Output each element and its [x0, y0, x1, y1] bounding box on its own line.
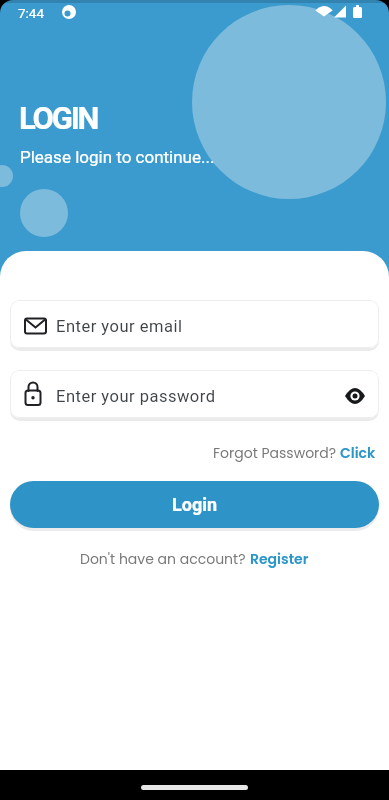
staticText: Login	[172, 494, 218, 515]
button[interactable]: Enter your password	[10, 370, 379, 418]
button[interactable]: Forgot Password?	[0, 443, 376, 463]
button[interactable]: Don't have an account?	[0, 549, 389, 569]
staticText: Click	[340, 443, 376, 463]
staticText: 7:44	[18, 5, 45, 21]
staticText: LOGIN	[19, 100, 98, 136]
staticText: Don't have an account?	[80, 549, 250, 569]
staticText: Forgot Password?	[213, 443, 340, 463]
staticText: Please login to continue...	[20, 147, 215, 167]
staticText: Register	[250, 549, 309, 569]
button[interactable]: Enter your email	[10, 300, 379, 348]
staticText: Enter your password	[56, 387, 331, 406]
staticText: Enter your email	[56, 317, 379, 336]
button[interactable]: Login	[10, 481, 379, 528]
